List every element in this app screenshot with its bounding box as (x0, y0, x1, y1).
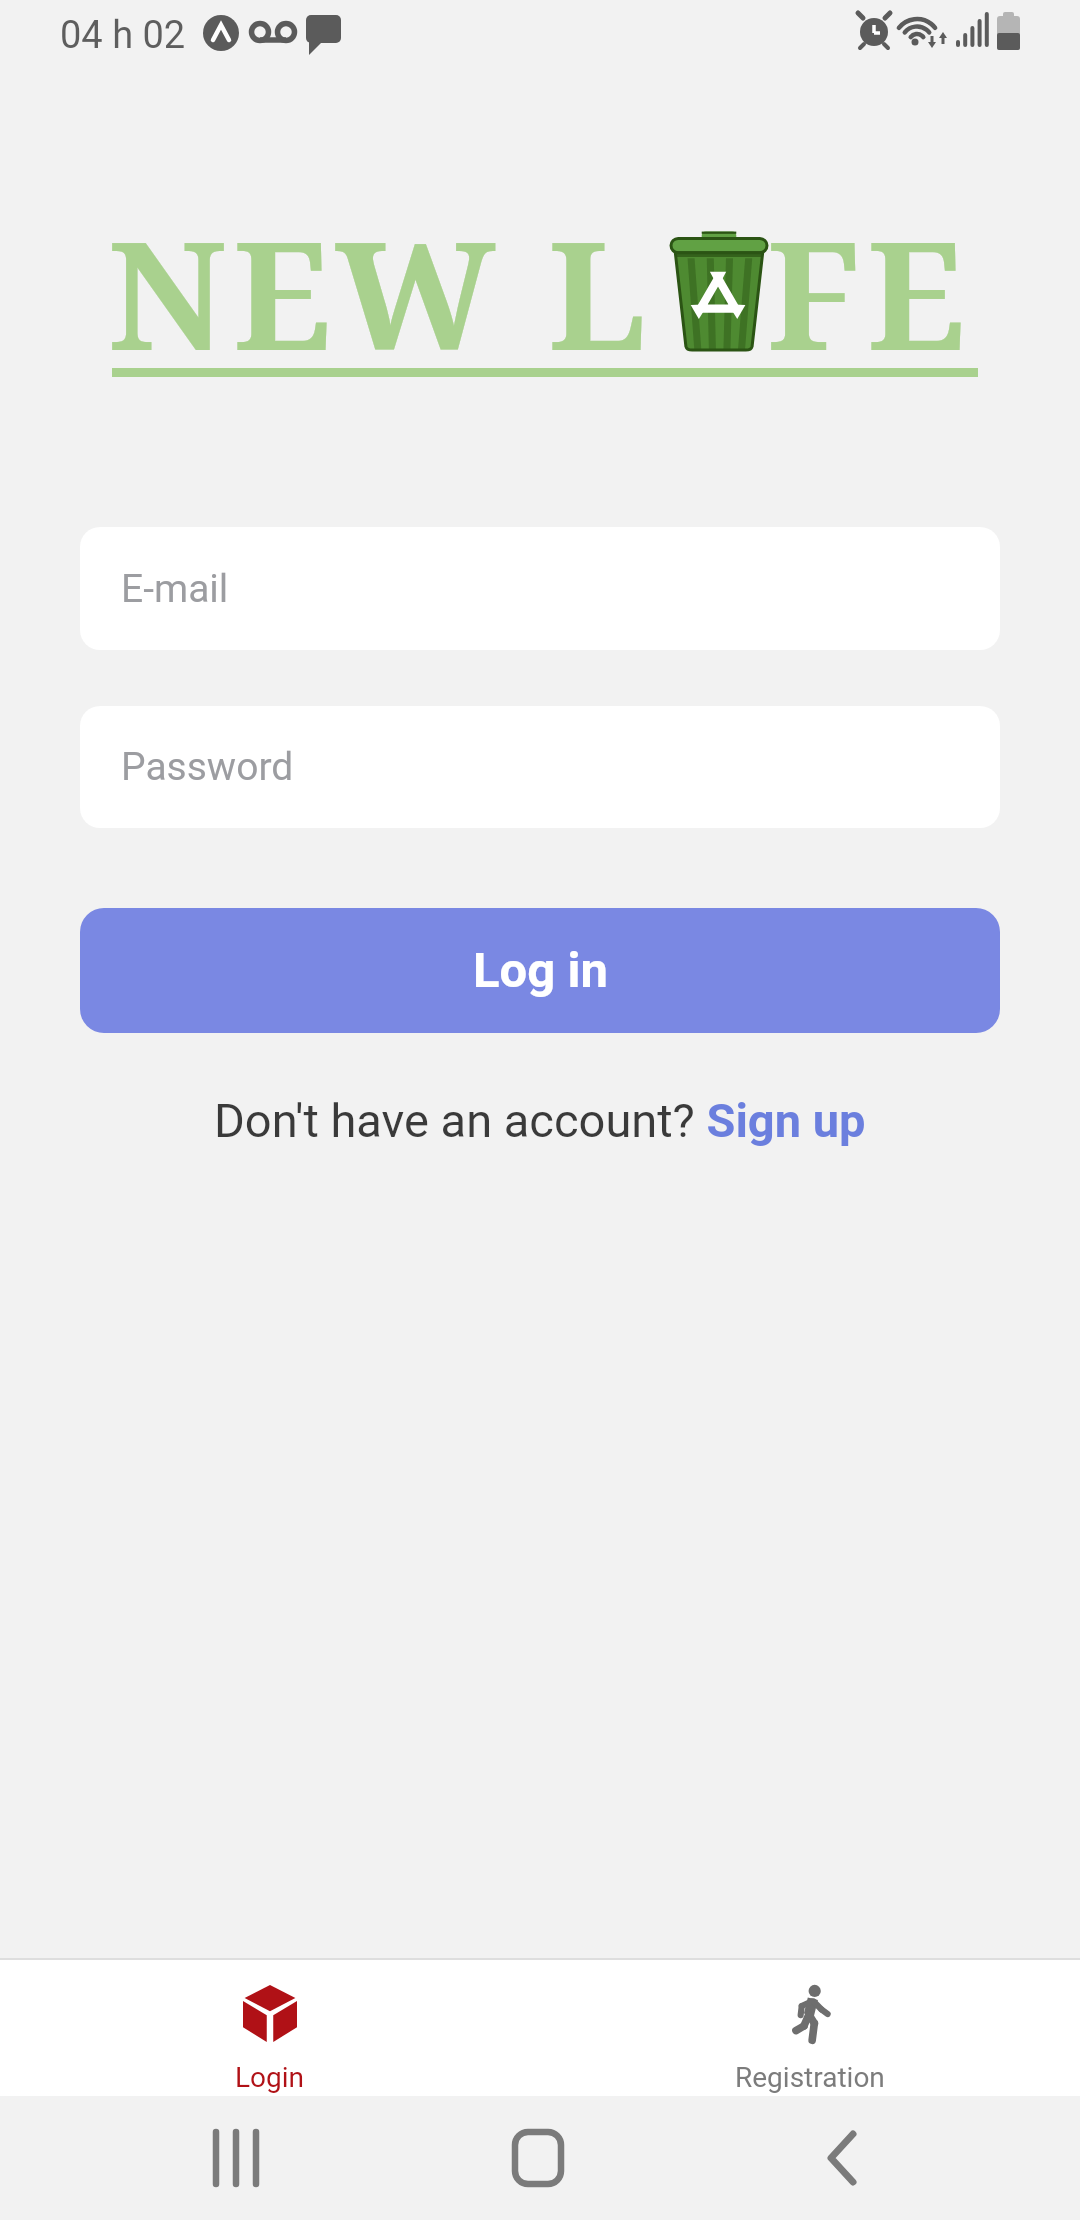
staticText: Registration (735, 2061, 885, 2094)
staticText: FE (767, 190, 973, 394)
staticText: Login (235, 2061, 305, 2094)
staticText: NEW L (108, 190, 654, 394)
button[interactable]: E-mail (80, 527, 1000, 650)
staticText: 04 h 02 (60, 13, 186, 58)
button[interactable]: Don't have an account? Sign up (214, 1093, 866, 1148)
button[interactable]: Password (80, 706, 1000, 828)
button[interactable]: Login (0, 1960, 540, 2096)
staticText: Password (121, 744, 294, 790)
button[interactable]: Log in (80, 908, 1000, 1033)
staticText: E-mail (121, 566, 229, 612)
button[interactable]: Registration (540, 1960, 1080, 2096)
staticText: Log in (473, 942, 608, 999)
